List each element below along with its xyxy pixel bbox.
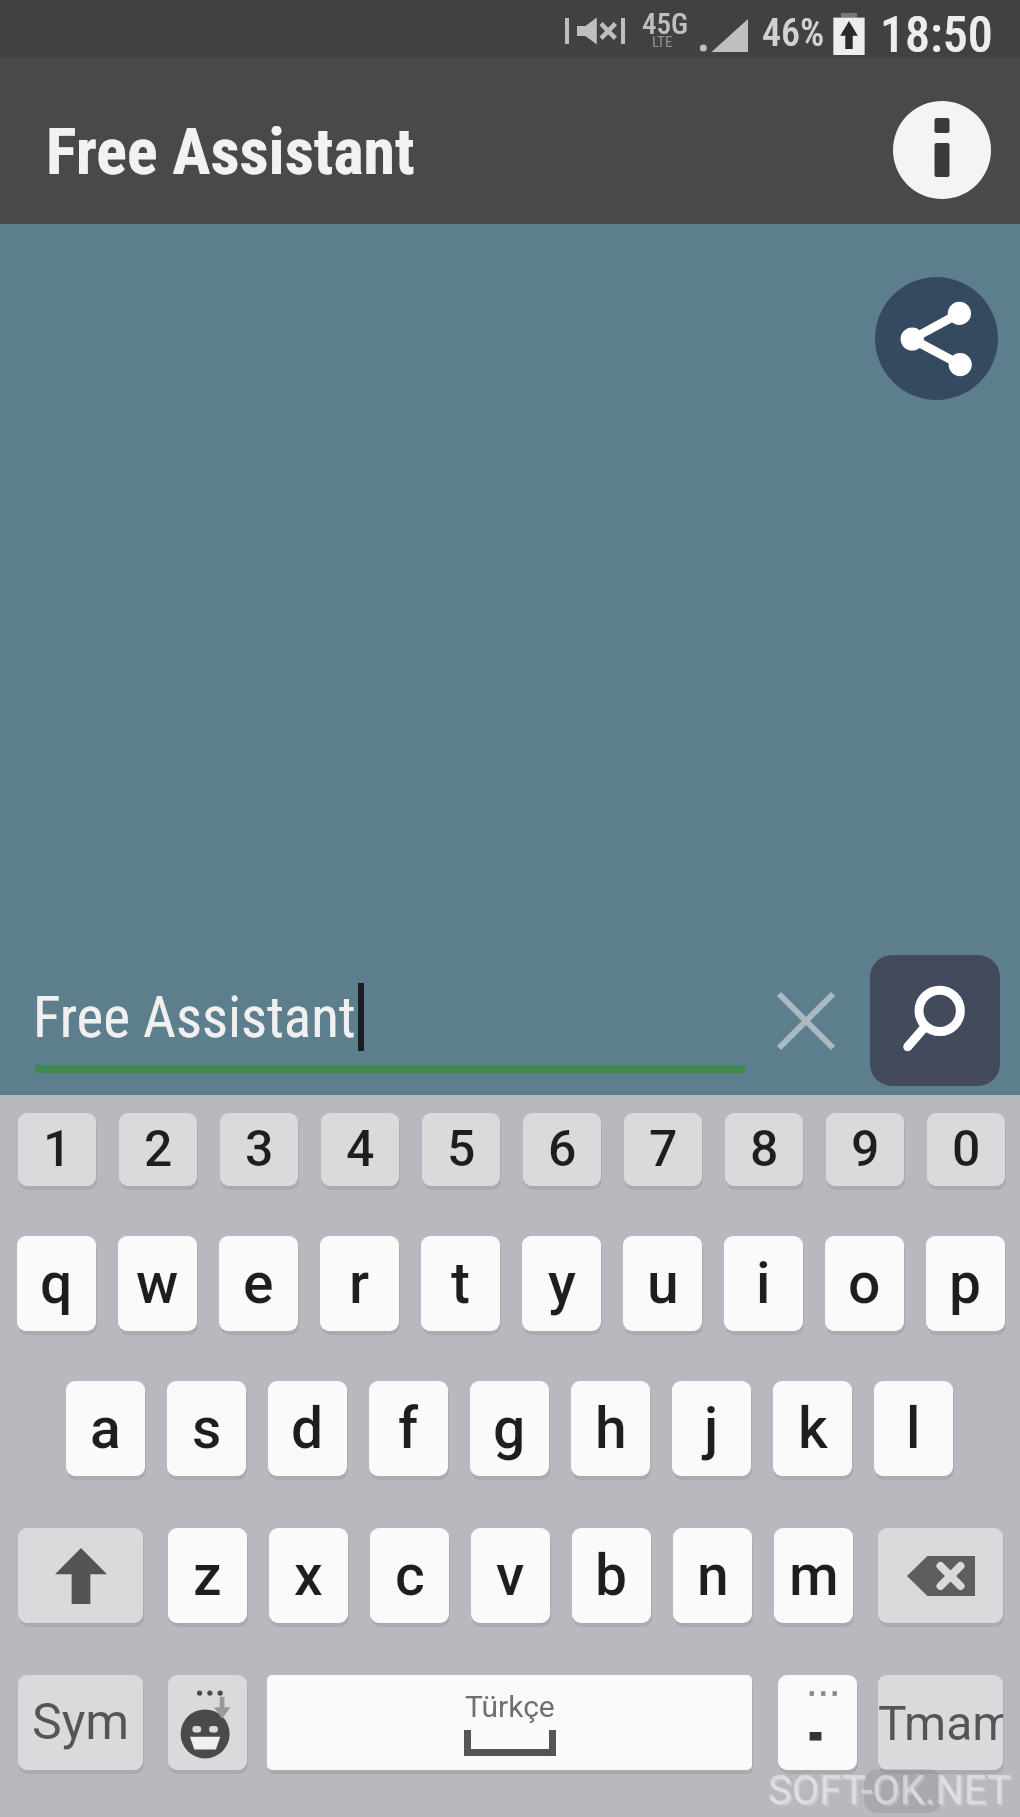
button[interactable]: p [926, 1236, 1005, 1331]
button[interactable]: Search [870, 955, 1000, 1086]
button[interactable]: i [724, 1236, 803, 1331]
staticText: e [243, 1250, 274, 1317]
button[interactable]: r [320, 1236, 399, 1331]
button[interactable]: 1 [18, 1113, 96, 1186]
staticText: 9 [851, 1120, 880, 1179]
button[interactable]: Share [875, 277, 998, 400]
button[interactable]: Info [890, 98, 994, 202]
button[interactable]: w [118, 1236, 197, 1331]
staticText: y [548, 1250, 576, 1317]
staticText: z [193, 1542, 222, 1609]
staticText: 45G [642, 7, 689, 41]
staticText: l [906, 1395, 921, 1462]
button[interactable]: 5 [422, 1113, 500, 1186]
button[interactable]: u [623, 1236, 702, 1331]
button[interactable]: Space [267, 1675, 752, 1770]
staticText: 5 [447, 1120, 476, 1179]
button[interactable]: g [470, 1381, 549, 1476]
staticText: 46% [762, 11, 825, 56]
button[interactable]: m [774, 1528, 853, 1623]
staticText: 3 [245, 1120, 274, 1179]
button[interactable]: k [773, 1381, 852, 1476]
staticText: c [395, 1542, 425, 1609]
staticText: 6 [548, 1120, 577, 1179]
staticText: Free Assistant [46, 115, 415, 190]
staticText: s [192, 1395, 222, 1462]
staticText: i [756, 1250, 771, 1317]
staticText: b [595, 1542, 628, 1609]
staticText: m [789, 1542, 839, 1609]
staticText: q [40, 1250, 73, 1317]
button[interactable]: y [522, 1236, 601, 1331]
staticText: j [704, 1395, 719, 1462]
button[interactable]: l [874, 1381, 953, 1476]
button[interactable]: e [219, 1236, 298, 1331]
button[interactable]: z [168, 1528, 247, 1623]
button[interactable]: 9 [826, 1113, 904, 1186]
button[interactable]: d [268, 1381, 347, 1476]
staticText: t [451, 1250, 470, 1317]
button[interactable]: 2 [119, 1113, 197, 1186]
button[interactable]: Period [778, 1675, 857, 1770]
staticText: g [493, 1395, 526, 1462]
staticText: h [595, 1395, 627, 1462]
staticText: d [291, 1395, 324, 1462]
button[interactable]: b [572, 1528, 651, 1623]
staticText: Sym [32, 1693, 130, 1752]
staticText: k [798, 1395, 828, 1462]
button[interactable]: s [167, 1381, 246, 1476]
button[interactable]: h [571, 1381, 650, 1476]
staticText: v [496, 1542, 525, 1609]
staticText: Türkçe [465, 1689, 555, 1724]
staticText: 4 [346, 1120, 375, 1179]
staticText: n [697, 1542, 729, 1609]
staticText: 0 [952, 1120, 981, 1179]
button[interactable]: q [17, 1236, 96, 1331]
button[interactable]: f [369, 1381, 448, 1476]
staticText: p [949, 1250, 982, 1317]
button[interactable]: Free Assistant [35, 972, 745, 1073]
staticText: SOFT-OK.NET [770, 1769, 1013, 1816]
button[interactable]: x [269, 1528, 348, 1623]
staticText: 7 [649, 1120, 678, 1179]
button[interactable]: 7 [624, 1113, 702, 1186]
button[interactable]: Emoji [168, 1675, 247, 1770]
staticText: 18:50 [880, 6, 993, 65]
button[interactable]: Backspace [878, 1528, 1003, 1623]
button[interactable]: v [471, 1528, 550, 1623]
button[interactable]: c [370, 1528, 449, 1623]
staticText: Tmam [878, 1695, 1003, 1751]
staticText: x [294, 1542, 323, 1609]
button[interactable]: Tmam [878, 1675, 1003, 1770]
button[interactable]: Shift [18, 1528, 143, 1623]
button[interactable]: 8 [725, 1113, 803, 1186]
button[interactable]: o [825, 1236, 904, 1331]
staticText: SOFT-OK.NET [768, 1767, 1011, 1814]
button[interactable]: 0 [927, 1113, 1005, 1186]
button[interactable]: a [66, 1381, 145, 1476]
staticText: 1 [43, 1120, 72, 1179]
staticText: f [398, 1395, 419, 1462]
button[interactable]: 6 [523, 1113, 601, 1186]
staticText: Free Assistant [33, 984, 356, 1051]
button[interactable]: Clear text [760, 975, 852, 1067]
staticText: 8 [750, 1120, 779, 1179]
button[interactable]: 4 [321, 1113, 399, 1186]
staticText: r [349, 1250, 370, 1317]
button[interactable]: n [673, 1528, 752, 1623]
staticText: w [136, 1250, 179, 1317]
staticText: 2 [144, 1120, 173, 1179]
staticText: o [848, 1250, 881, 1317]
button[interactable]: 3 [220, 1113, 298, 1186]
button[interactable]: t [421, 1236, 500, 1331]
staticText: u [647, 1250, 679, 1317]
button[interactable]: Sym [18, 1675, 143, 1770]
staticText: a [90, 1395, 121, 1462]
staticText: LTE [652, 33, 673, 51]
button[interactable]: j [672, 1381, 751, 1476]
